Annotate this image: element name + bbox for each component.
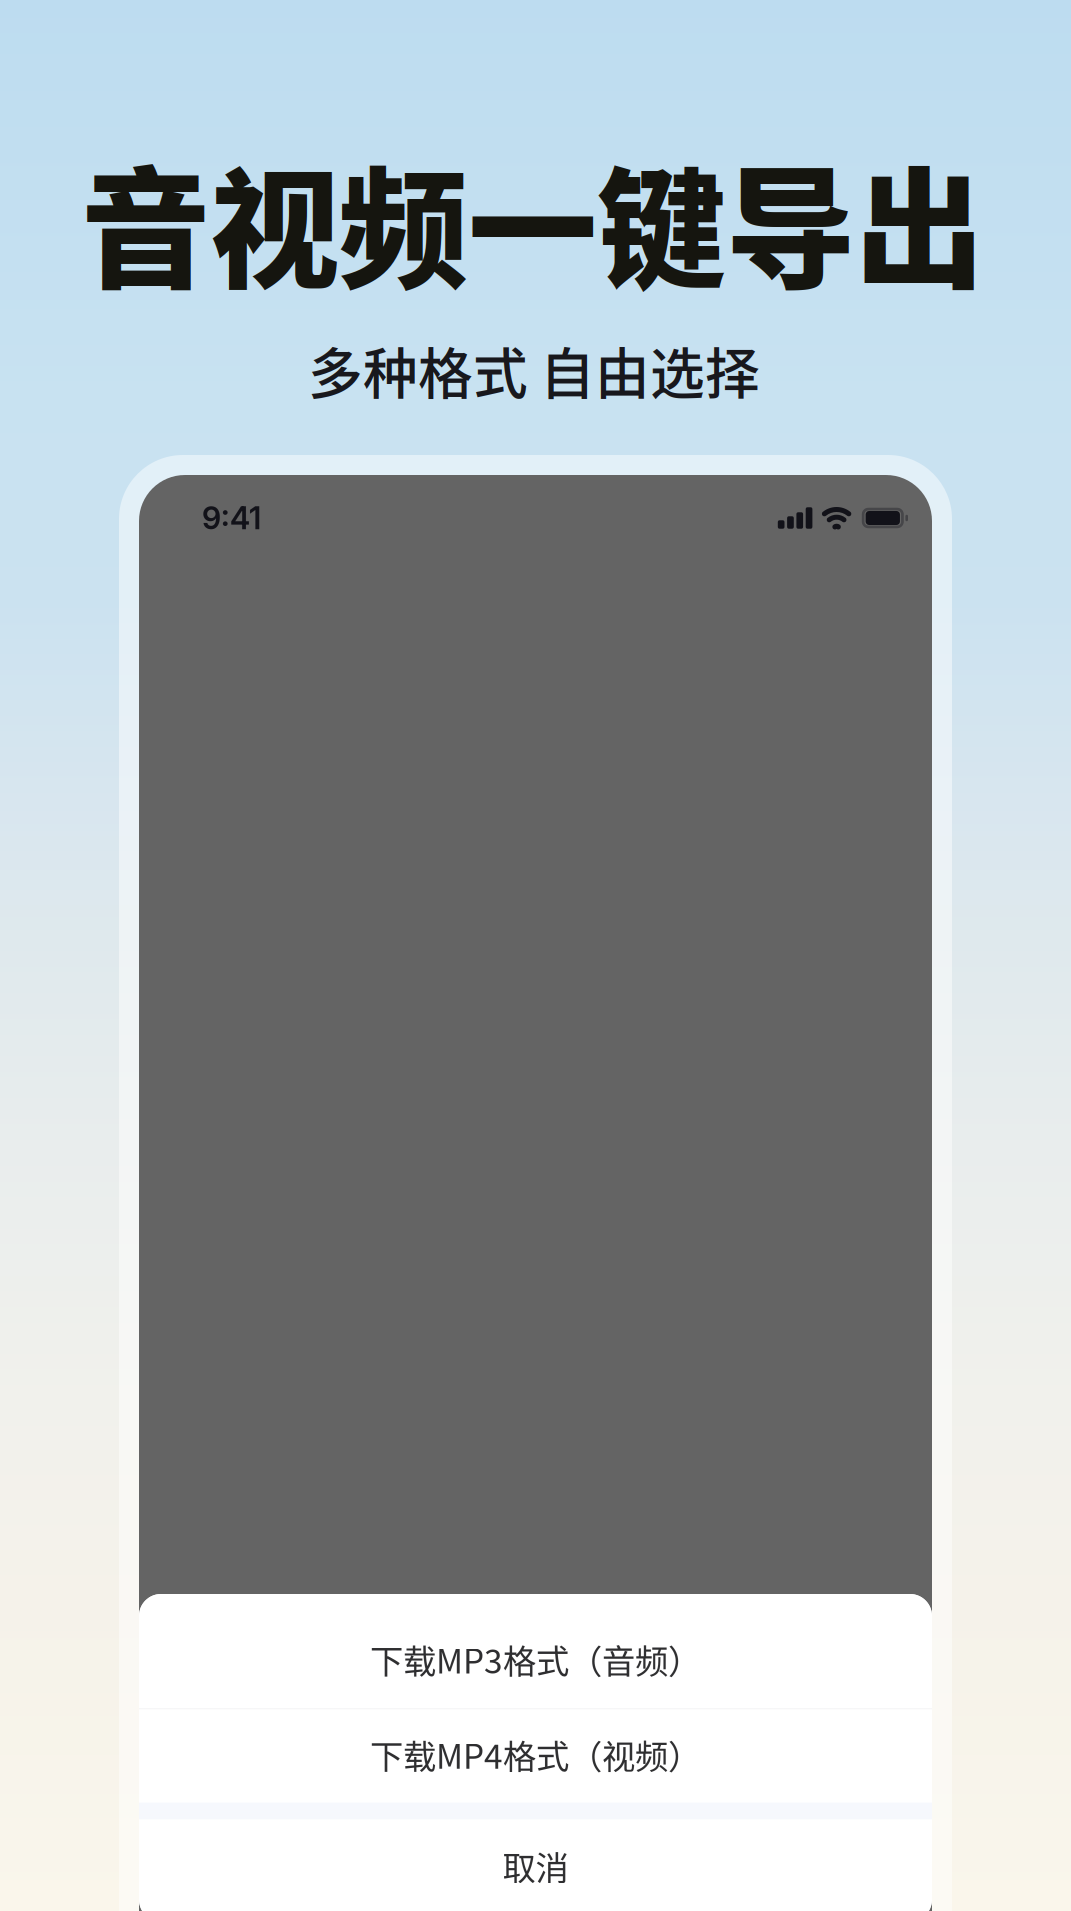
staticText: 下载MP4格式（视频） [370, 1730, 701, 1778]
staticText: 取消 [502, 1841, 568, 1890]
button[interactable]: 下载MP3格式（音频） [139, 1594, 932, 1708]
staticText: 音视频一键导出 [81, 127, 984, 314]
button[interactable]: 取消 [139, 1820, 932, 1911]
staticText: 多种格式 自由选择 [308, 330, 760, 409]
staticText: 9:41 [202, 499, 261, 536]
button[interactable]: 下载MP4格式（视频） [139, 1710, 932, 1803]
staticText: 下载MP3格式（音频） [370, 1635, 701, 1683]
